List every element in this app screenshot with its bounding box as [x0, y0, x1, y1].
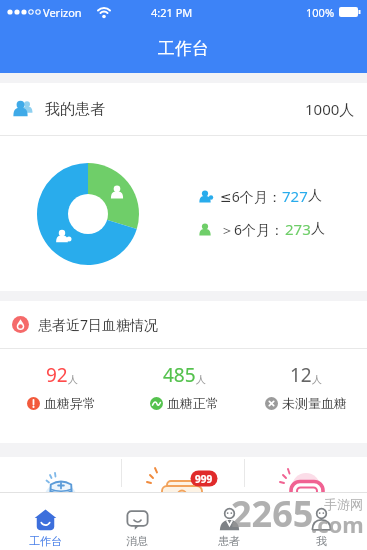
staticText: Verizon	[43, 5, 82, 20]
button[interactable]	[245, 457, 367, 492]
staticText: 100%	[306, 5, 335, 20]
staticText: 人	[308, 187, 322, 205]
button[interactable]	[122, 457, 244, 492]
staticText: 人	[311, 220, 325, 238]
staticText: 患者近7日血糖情况	[38, 315, 159, 334]
staticText: 4:21 PM	[151, 5, 193, 20]
button[interactable]: ＞6个月：	[198, 219, 325, 239]
staticText: ＞6个月：	[220, 220, 285, 239]
staticText: 273	[285, 219, 311, 239]
staticText: 我的患者	[45, 100, 105, 119]
staticText: 未测量血糖	[282, 395, 347, 411]
staticText: 工作台	[158, 38, 209, 59]
staticText: 727	[282, 186, 308, 206]
staticText: 血糖正常	[167, 395, 219, 411]
staticText: 人	[196, 373, 206, 386]
staticText: 人	[68, 373, 78, 386]
button[interactable]: 12	[245, 362, 367, 443]
staticText: 1000人	[305, 99, 355, 119]
button[interactable]: ≤6个月：	[198, 186, 322, 206]
staticText: 2265	[231, 489, 314, 538]
staticText: 血糖异常	[44, 395, 96, 411]
staticText: ≤6个月：	[220, 187, 282, 206]
staticText: .com	[311, 509, 364, 539]
button[interactable]: 92	[0, 362, 123, 443]
staticText: 92	[46, 362, 68, 388]
button[interactable]: 我的患者	[12, 83, 355, 135]
staticText: 工作台	[29, 534, 62, 548]
staticText: 消息	[126, 534, 148, 548]
staticText: 12	[290, 362, 312, 388]
staticText: 999	[195, 472, 213, 486]
staticText: 患者	[218, 534, 240, 548]
staticText: 手游网	[324, 496, 363, 512]
button[interactable]	[0, 457, 121, 492]
button[interactable]: 工作台	[0, 493, 91, 550]
button[interactable]: 消息	[91, 493, 183, 550]
staticText: 485	[163, 362, 196, 388]
button[interactable]: 485	[123, 362, 245, 443]
staticText: 人	[312, 373, 322, 386]
staticText: 我	[316, 534, 327, 548]
button[interactable]: 我	[275, 493, 367, 550]
button[interactable]: 患者	[183, 493, 275, 550]
